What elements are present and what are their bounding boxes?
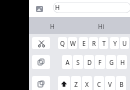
button[interactable]: Paste xyxy=(32,76,50,90)
button[interactable]: R xyxy=(89,37,98,49)
staticText: R xyxy=(92,39,96,47)
button[interactable]: Shift xyxy=(58,76,70,90)
staticText: Q xyxy=(60,39,65,47)
staticText: H xyxy=(120,58,125,66)
staticText: C xyxy=(97,80,101,88)
button[interactable]: F xyxy=(95,55,105,69)
staticText: D xyxy=(87,58,92,66)
staticText: Z xyxy=(74,80,78,88)
staticText: E xyxy=(82,39,86,47)
button[interactable]: Copy xyxy=(32,55,50,69)
button[interactable]: Cut xyxy=(32,37,50,49)
button[interactable]: U xyxy=(120,37,129,49)
staticText: Hi xyxy=(98,22,105,30)
staticText: S xyxy=(76,58,80,66)
button[interactable]: E xyxy=(79,37,88,49)
button[interactable]: Hi xyxy=(85,17,117,34)
staticText: A xyxy=(65,58,70,66)
button[interactable]: Y xyxy=(110,37,119,49)
button[interactable]: A xyxy=(62,55,72,69)
button[interactable]: X xyxy=(82,76,92,90)
button[interactable]: Z xyxy=(71,76,81,90)
staticText: H xyxy=(50,22,55,30)
staticText: G xyxy=(109,58,114,66)
staticText: U xyxy=(122,39,127,47)
button[interactable]: Q xyxy=(58,37,67,49)
staticText: F xyxy=(98,58,102,66)
button[interactable]: V xyxy=(105,76,115,90)
button[interactable]: B xyxy=(116,76,126,90)
button[interactable]: T xyxy=(99,37,108,49)
button[interactable]: G xyxy=(106,55,116,69)
button[interactable]: H xyxy=(36,17,68,34)
staticText: B xyxy=(119,80,124,88)
button[interactable]: C xyxy=(94,76,104,90)
button[interactable]: Insert image xyxy=(36,6,43,12)
button[interactable]: H xyxy=(117,55,127,69)
staticText: H xyxy=(55,3,60,12)
staticText: X xyxy=(85,80,89,88)
staticText: Y xyxy=(113,39,117,47)
staticText: W xyxy=(70,39,76,47)
button[interactable]: H xyxy=(53,2,130,13)
button[interactable]: W xyxy=(68,37,77,49)
staticText: T xyxy=(102,39,106,47)
button[interactable]: S xyxy=(73,55,83,69)
staticText: V xyxy=(108,80,112,88)
button[interactable]: D xyxy=(84,55,94,69)
